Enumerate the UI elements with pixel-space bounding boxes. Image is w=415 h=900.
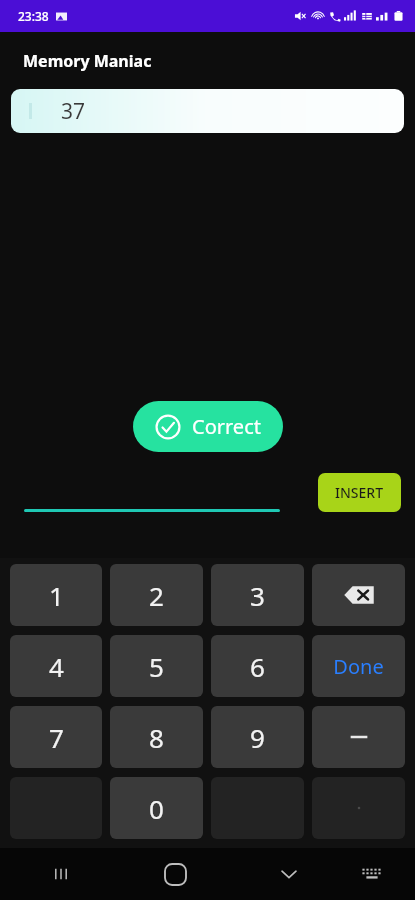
button[interactable]: Change keyboard (349, 851, 395, 897)
button[interactable]: Hide keyboard (266, 851, 312, 897)
staticText: 1 (49, 578, 64, 613)
staticText: 3 (250, 578, 265, 613)
staticText: 9 (250, 720, 265, 755)
button[interactable]: 5 (110, 635, 203, 697)
staticText: 4 (49, 649, 64, 684)
button[interactable]: Done (312, 635, 405, 697)
staticText: Correct (192, 413, 261, 440)
button[interactable]: Home (152, 851, 198, 897)
button[interactable] (24, 478, 280, 512)
staticText: 2 (149, 578, 164, 613)
button[interactable]: 8 (110, 706, 203, 768)
staticText: INSERT (335, 483, 384, 502)
button[interactable]: Backspace (312, 564, 405, 626)
staticText: 5 (149, 649, 164, 684)
button[interactable]: 1 (10, 564, 102, 626)
staticText: 8 (149, 720, 164, 755)
button[interactable]: Recents (38, 851, 84, 897)
staticText: 37 (61, 97, 86, 126)
button[interactable]: 6 (211, 635, 304, 697)
button[interactable]: 3 (211, 564, 304, 626)
button[interactable]: Correct (133, 401, 283, 452)
button[interactable] (312, 706, 405, 768)
staticText: Done (333, 653, 384, 680)
button[interactable]: 4 (10, 635, 102, 697)
button[interactable]: INSERT (318, 473, 401, 512)
button[interactable]: 2 (110, 564, 203, 626)
button[interactable]: 9 (211, 706, 304, 768)
staticText: 6 (250, 649, 265, 684)
button[interactable]: 0 (110, 777, 203, 839)
staticText: Memory Maniac (23, 50, 152, 72)
staticText: 23:38 (18, 8, 49, 24)
staticText: 0 (149, 791, 164, 826)
button[interactable]: 7 (10, 706, 102, 768)
button[interactable]: 37 (11, 89, 404, 133)
staticText: 7 (49, 720, 64, 755)
